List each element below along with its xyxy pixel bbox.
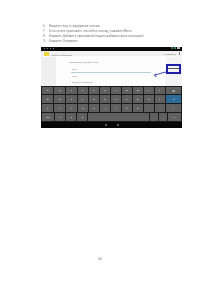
staticText: е [93,89,95,92]
button[interactable]: ⏎ [166,95,181,103]
staticText: Тема [72,75,78,78]
button[interactable]: г [111,87,121,94]
staticText: ф [47,98,49,101]
staticText: х [159,89,161,92]
button[interactable]: т [100,104,110,112]
staticText: ь [115,107,117,110]
button[interactable]: н [100,87,110,94]
button[interactable]: Settings [66,113,76,121]
button[interactable]: , [159,113,167,121]
staticText: ivanovano91@gmail.com [69,60,99,63]
button[interactable]: и [89,104,99,112]
button[interactable]: к [78,87,88,94]
button[interactable]: у [66,87,77,94]
staticText: ж [148,98,150,101]
button[interactable]: Microphone [55,113,65,121]
staticText: ы [59,98,61,101]
button[interactable]: е [89,87,99,94]
staticText: 8. [43,34,46,38]
staticText: м [82,107,84,110]
button[interactable]: Новое сообщение [44,52,73,56]
staticText: б [126,107,128,110]
staticText: ⌫ [172,90,175,92]
staticText: э [159,98,161,101]
staticText: . [154,116,155,119]
staticText: г [116,89,117,92]
staticText: Если хотите приложить что-либо к письму,… [49,29,133,33]
staticText: 9. [43,39,46,43]
staticText: п [93,98,95,101]
button[interactable]: в [66,95,77,103]
staticText: й [47,89,49,92]
staticText: . [160,107,161,110]
staticText: ц [59,89,61,92]
button[interactable]: д [133,95,143,103]
button[interactable]: щ [133,87,143,94]
button[interactable]: о [111,95,121,103]
staticText: у [71,89,73,92]
button[interactable]: р [100,95,110,103]
staticText: р [104,98,106,101]
staticText: Кому [72,68,78,71]
staticText: Новое сообщение [51,53,73,56]
button[interactable]: й [42,87,53,94]
staticText: д [137,98,139,101]
button[interactable]: ?123 [42,113,54,121]
button[interactable]: Отправить [164,52,177,55]
button[interactable]: п [89,95,99,103]
button[interactable]: ц [54,87,65,94]
staticText: а [82,98,84,101]
staticText: с [71,107,73,110]
staticText: ? [173,107,174,110]
button[interactable]: э [155,95,165,103]
button[interactable]: м [78,104,88,112]
staticText: ⏎ [173,98,175,100]
button[interactable]: ь [111,104,121,112]
staticText: Нажмите Отправить. [49,39,79,43]
button[interactable]: ? [166,104,181,112]
staticText: 7. [43,29,46,33]
button[interactable]: а [78,95,88,103]
button[interactable]: с [66,104,77,112]
staticText: н [104,89,106,92]
button[interactable]: ч [54,104,65,112]
button[interactable]: Next [168,113,181,121]
button[interactable]: ⌫ [166,87,181,94]
staticText: , [163,116,164,119]
button[interactable]: ш [122,87,132,94]
button[interactable]: ю [133,104,143,112]
button[interactable]: я [42,104,53,112]
staticText: щ [137,89,139,92]
staticText: в [71,98,73,101]
button[interactable]: ф [42,95,53,103]
staticText: Введите сообщение [72,81,93,84]
staticText: Введите тему и содержание письма. [49,24,101,28]
staticText: Нажмите Добавить приложение (можно добав… [49,34,145,38]
button[interactable]: Language [77,113,87,121]
staticText: 6. [43,24,46,28]
button[interactable]: б [122,104,132,112]
staticText: →| [173,116,176,118]
button[interactable]: , [144,104,154,112]
staticText: з [148,89,150,92]
staticText: л [126,98,128,101]
staticText: ш [126,89,128,92]
staticText: ?123 [46,116,50,118]
staticText: к [82,89,84,92]
staticText: 44 [98,257,102,261]
button[interactable]: х [155,87,165,94]
button[interactable]: ж [144,95,154,103]
staticText: , [149,107,150,110]
staticText: о [115,98,117,101]
staticText: т [105,107,106,110]
button[interactable]: л [122,95,132,103]
button[interactable]: ы [54,95,65,103]
staticText: ю [137,107,139,110]
button[interactable]: з [144,87,154,94]
